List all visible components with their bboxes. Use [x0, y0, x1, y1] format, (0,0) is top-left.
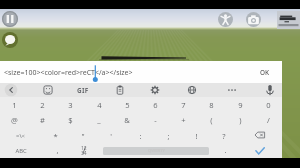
staticText: *: [53, 131, 58, 141]
button[interactable]: =\<: [6, 128, 34, 143]
button[interactable]: Enter: [252, 143, 268, 159]
staticText: !: [195, 131, 198, 141]
button[interactable]: 2: [28, 97, 56, 112]
button[interactable]: !: [182, 128, 210, 143]
button[interactable]: ?: [210, 128, 238, 143]
staticText: ,: [56, 145, 59, 155]
staticText: OK: [260, 68, 270, 77]
button[interactable]: #: [28, 112, 56, 127]
staticText: /: [267, 115, 270, 125]
button[interactable]: ): [226, 112, 254, 127]
staticText: &: [124, 115, 130, 125]
button[interactable]: ;: [154, 128, 182, 143]
button[interactable]: OK: [255, 63, 275, 81]
button[interactable]: Camera: [246, 12, 261, 27]
staticText: @: [11, 115, 18, 125]
button[interactable]: /: [254, 112, 282, 127]
button[interactable]: 3: [56, 97, 84, 112]
button[interactable]: &: [113, 112, 141, 127]
staticText: (: [210, 115, 213, 125]
button[interactable]: .: [211, 142, 239, 157]
staticText: =\<: [16, 132, 25, 140]
staticText: ": [81, 131, 85, 141]
staticText: 9: [238, 100, 243, 110]
button[interactable]: Player: [218, 12, 233, 27]
button[interactable]: Leaderboard: [277, 11, 300, 29]
button[interactable]: 5: [113, 97, 141, 112]
staticText: GIF: [77, 86, 89, 95]
button[interactable]: Chat: [2, 32, 18, 48]
staticText: 34: [81, 150, 87, 157]
staticText: :: [139, 131, 142, 141]
button[interactable]: 7: [169, 97, 197, 112]
button[interactable]: ABC: [7, 143, 35, 158]
button[interactable]: ,: [43, 142, 71, 157]
staticText: ;: [167, 131, 170, 141]
staticText: 5: [125, 100, 130, 110]
button[interactable]: 8: [197, 97, 225, 112]
button[interactable]: Clipboard: [113, 83, 127, 97]
button[interactable]: Expand toolbar: [4, 83, 18, 97]
button[interactable]: *: [41, 128, 69, 143]
button[interactable]: ": [69, 128, 97, 143]
button[interactable]: 0: [254, 97, 282, 112]
staticText: $: [68, 115, 73, 125]
staticText: 0: [266, 100, 271, 110]
button[interactable]: Stickers: [41, 83, 55, 97]
button[interactable]: (: [197, 112, 225, 127]
staticText: 3: [68, 100, 73, 110]
button[interactable]: Settings: [148, 83, 162, 97]
staticText: ): [239, 115, 242, 125]
button[interactable]: _: [85, 112, 113, 127]
staticText: ?: [222, 131, 226, 141]
button[interactable]: 4: [85, 97, 113, 112]
button[interactable]: @: [0, 112, 28, 127]
staticText: 12: [81, 145, 87, 152]
button[interactable]: $: [56, 112, 84, 127]
button[interactable]: Numbers: [70, 143, 98, 158]
button[interactable]: Backspace: [252, 127, 268, 143]
button[interactable]: 9: [226, 97, 254, 112]
staticText: ABC: [15, 147, 27, 155]
button[interactable]: 1: [0, 97, 28, 112]
staticText: <size=100><color=red>reCT</a></size>: [4, 68, 133, 78]
staticText: 8: [209, 100, 214, 110]
staticText: #: [40, 115, 45, 125]
staticText: 7: [181, 100, 186, 110]
staticText: 4: [97, 100, 102, 110]
staticText: 1: [12, 100, 17, 110]
button[interactable]: Voice input: [263, 83, 277, 97]
staticText: .: [224, 145, 227, 155]
staticText: ': [110, 131, 112, 141]
button[interactable]: +: [169, 112, 197, 127]
staticText: 6: [153, 100, 158, 110]
staticText: _: [97, 115, 101, 125]
staticText: +: [181, 115, 186, 125]
button[interactable]: Pause: [2, 11, 18, 27]
button[interactable]: -: [141, 112, 169, 127]
button[interactable]: More options: [225, 83, 239, 97]
button[interactable]: Language: [185, 83, 199, 97]
button[interactable]: 6: [141, 97, 169, 112]
button[interactable]: GIF: [75, 83, 91, 97]
staticText: -: [154, 115, 157, 125]
staticText: 2: [40, 100, 45, 110]
button[interactable]: ': [97, 128, 125, 143]
button[interactable]: :: [126, 128, 154, 143]
